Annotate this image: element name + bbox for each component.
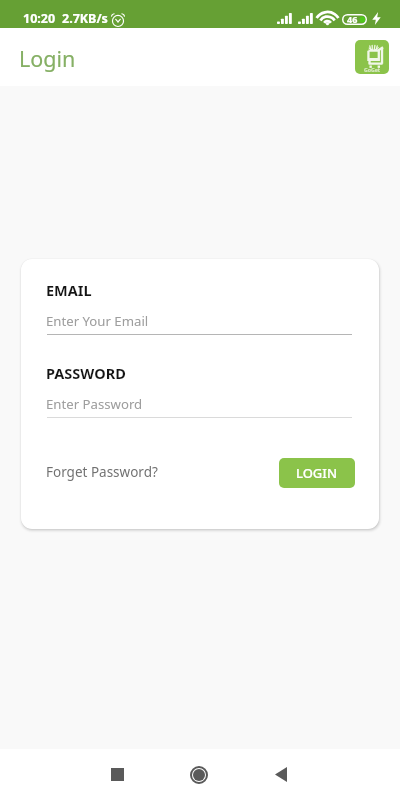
staticText: 46 bbox=[347, 13, 358, 25]
button[interactable]: Enter Password bbox=[47, 390, 352, 418]
staticText: Login bbox=[19, 44, 76, 73]
button[interactable]: Forget Password? bbox=[46, 461, 158, 482]
staticText: GoGet bbox=[355, 66, 389, 74]
button[interactable]: Back bbox=[250, 749, 312, 800]
staticText: Forget Password? bbox=[46, 463, 158, 481]
staticText: LOGIN bbox=[296, 464, 338, 482]
staticText: 10:20 bbox=[23, 10, 56, 27]
button[interactable]: Recents bbox=[86, 749, 148, 800]
button[interactable]: Enter Your Email bbox=[47, 307, 352, 335]
button[interactable]: Home bbox=[168, 749, 230, 800]
staticText: Enter Password bbox=[46, 395, 143, 413]
button[interactable]: LOGIN bbox=[279, 458, 355, 488]
staticText: EMAIL bbox=[46, 280, 92, 300]
staticText: Enter Your Email bbox=[46, 312, 149, 330]
staticText: 2.7KB/s bbox=[62, 10, 108, 27]
button[interactable]: GoGet app logo bbox=[355, 40, 389, 74]
staticText: PASSWORD bbox=[46, 363, 126, 383]
